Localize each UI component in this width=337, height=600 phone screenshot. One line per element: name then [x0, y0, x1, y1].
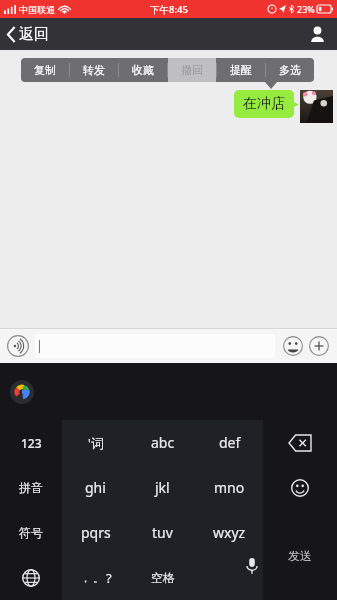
staticText: 收藏	[132, 63, 154, 77]
button[interactable]: ghi	[62, 465, 129, 510]
button[interactable]: 多选	[266, 58, 314, 82]
button[interactable]: 在冲店	[234, 90, 299, 118]
button[interactable]: abc	[129, 420, 196, 465]
staticText: 拼音	[19, 480, 43, 495]
button[interactable]: 提醒	[217, 58, 265, 82]
staticText: ?	[106, 569, 112, 587]
button[interactable]: Voice input	[6, 334, 30, 358]
staticText: abc	[151, 433, 175, 452]
button[interactable]: 123	[0, 420, 62, 465]
button[interactable]: 撤回	[168, 58, 216, 82]
other: Delete	[263, 420, 337, 465]
staticText: ghi	[85, 478, 106, 497]
other: Switch language	[0, 555, 62, 600]
button[interactable]: 复制	[21, 58, 69, 82]
button[interactable]: 拼音	[0, 465, 62, 510]
button[interactable]: 空格	[129, 555, 196, 600]
button[interactable]: wxyz	[196, 510, 263, 555]
other: Emoji keyboard	[263, 465, 337, 510]
button[interactable]: mno	[196, 465, 263, 510]
staticText: 123	[21, 435, 42, 451]
staticText: 发送	[288, 548, 312, 563]
button[interactable]: 收藏	[119, 58, 167, 82]
button[interactable]: tuv	[129, 510, 196, 555]
button[interactable]: Emoji keyboard	[263, 465, 337, 510]
staticText: 在冲店	[243, 95, 285, 113]
button[interactable]: ，	[62, 555, 129, 600]
staticText: 撤回	[181, 63, 203, 77]
staticText: 转发	[83, 63, 105, 77]
staticText: '	[88, 435, 91, 451]
button[interactable]: 发送	[263, 510, 337, 600]
staticText: 中国联通	[19, 4, 55, 15]
button[interactable]: def	[196, 420, 263, 465]
button[interactable]: Avatar	[300, 90, 333, 123]
button[interactable]: Emoji	[281, 334, 305, 358]
staticText: pqrs	[81, 523, 111, 542]
button[interactable]: Contact profile	[298, 21, 337, 47]
button[interactable]: More options	[307, 334, 331, 358]
staticText: 下午8:45	[150, 3, 188, 16]
other: Voice typing	[196, 555, 263, 600]
staticText: 复制	[34, 63, 56, 77]
staticText: 空格	[151, 570, 175, 585]
button[interactable]	[263, 510, 337, 555]
staticText: wxyz	[213, 523, 246, 542]
button[interactable]: pqrs	[62, 510, 129, 555]
staticText: 。	[93, 571, 104, 585]
staticText: def	[219, 433, 241, 452]
button[interactable]: Google	[10, 380, 34, 404]
staticText: 符号	[19, 525, 43, 540]
button[interactable]: Switch language	[0, 555, 62, 600]
staticText: ，	[80, 571, 91, 585]
button[interactable]: 转发	[70, 58, 118, 82]
button[interactable]: jkl	[129, 465, 196, 510]
staticText: jkl	[155, 478, 170, 497]
button[interactable]	[263, 555, 337, 600]
button[interactable]: 符号	[0, 510, 62, 555]
button[interactable]: Voice typing	[196, 555, 263, 600]
staticText: 返回	[19, 25, 49, 44]
staticText: 多选	[279, 63, 301, 77]
button[interactable]: 返回	[0, 21, 59, 48]
button[interactable]: Delete	[263, 420, 337, 465]
staticText: mno	[214, 478, 245, 497]
staticText: 提醒	[230, 63, 252, 77]
staticText: 词	[91, 435, 104, 451]
staticText: 23%	[297, 3, 315, 15]
button[interactable]	[35, 334, 275, 358]
staticText: tuv	[152, 523, 173, 542]
button[interactable]: '	[62, 420, 129, 465]
